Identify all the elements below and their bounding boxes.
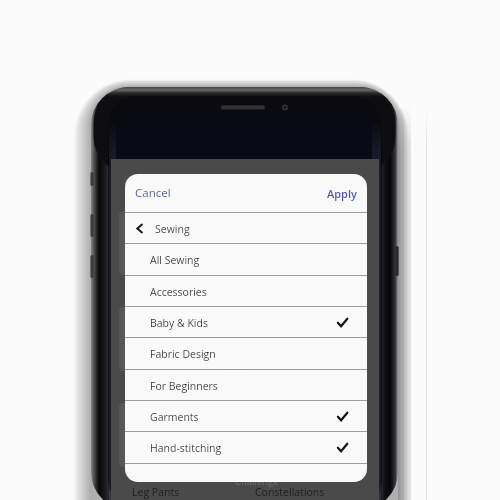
- staticText: Baby & Kids: [150, 316, 208, 330]
- staticText: Foundational Figure: [235, 389, 324, 402]
- button[interactable]: Apply: [317, 177, 367, 210]
- button[interactable]: Back: [125, 213, 367, 244]
- button[interactable]: Hand-stitching: [125, 432, 367, 463]
- staticText: All Sewing: [150, 253, 200, 267]
- staticText: My Classes: [111, 170, 379, 190]
- staticText: Cancel: [135, 185, 171, 201]
- button[interactable]: Accessories: [125, 276, 367, 307]
- staticText: Apply: [327, 186, 357, 201]
- button[interactable]: Cancel: [125, 176, 181, 210]
- button[interactable]: Baby & Kids: [125, 307, 367, 338]
- button[interactable]: Fabric Design: [125, 338, 367, 369]
- staticText: Embroidered Constellations: [235, 315, 359, 328]
- staticText: For Beginners: [150, 379, 218, 393]
- other: Back: [134, 223, 145, 234]
- staticText: Hand-stitching: [150, 441, 222, 455]
- staticText: Garments: [150, 410, 199, 424]
- button[interactable]: All Sewing: [125, 244, 367, 275]
- staticText: Leg Pants: [132, 485, 180, 499]
- staticText: Fabric Design: [150, 347, 216, 361]
- staticText: American Sketchbook: [235, 462, 332, 475]
- staticText: Challenge: [235, 475, 279, 488]
- button[interactable]: For Beginners: [125, 370, 367, 401]
- button[interactable]: Garments: [125, 401, 367, 432]
- staticText: Accessories: [150, 285, 207, 299]
- staticText: Sewing: [155, 222, 190, 236]
- staticText: Constellations: [255, 485, 325, 499]
